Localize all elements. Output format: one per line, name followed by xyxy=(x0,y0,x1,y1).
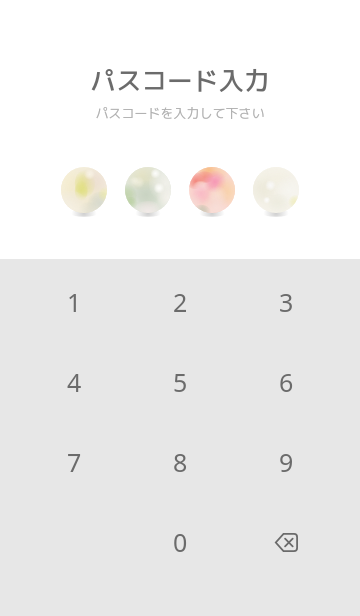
button[interactable]: 5 xyxy=(127,342,233,422)
button[interactable]: 1 xyxy=(21,262,127,342)
button[interactable]: 0 xyxy=(127,502,233,582)
button[interactable]: 7 xyxy=(21,422,127,502)
staticText: 0 xyxy=(173,525,188,559)
staticText: 9 xyxy=(279,445,294,479)
staticText: 7 xyxy=(67,445,82,479)
staticText: 6 xyxy=(279,365,294,399)
staticText: 3 xyxy=(279,285,294,319)
staticText: 5 xyxy=(173,365,188,399)
button[interactable]: 8 xyxy=(127,422,233,502)
staticText: 1 xyxy=(67,285,82,319)
button[interactable]: Delete xyxy=(233,502,339,582)
staticText: 2 xyxy=(173,285,188,319)
button[interactable]: 6 xyxy=(233,342,339,422)
button[interactable]: 2 xyxy=(127,262,233,342)
staticText: 4 xyxy=(67,365,82,399)
staticText: 8 xyxy=(173,445,188,479)
button[interactable]: 9 xyxy=(233,422,339,502)
button[interactable]: 3 xyxy=(233,262,339,342)
button[interactable]: 4 xyxy=(21,342,127,422)
staticText: パスコードを入力して下さい xyxy=(95,104,265,122)
staticText: パスコード入力 xyxy=(90,62,270,98)
